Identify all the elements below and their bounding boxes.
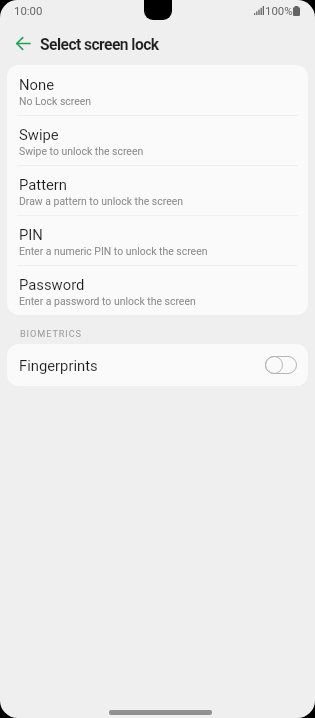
button[interactable]: None [7, 65, 308, 115]
staticText: Password [19, 276, 85, 293]
staticText: No Lock screen [19, 95, 92, 107]
staticText: 10:00 [14, 4, 43, 17]
button[interactable]: Fingerprints [7, 344, 308, 386]
staticText: Draw a pattern to unlock the screen [19, 195, 183, 207]
staticText: PIN [19, 226, 43, 243]
staticText: Fingerprints [19, 357, 98, 374]
button[interactable]: PIN [7, 215, 308, 265]
button[interactable]: Navigate up [7, 27, 39, 59]
button[interactable]: Swipe [7, 115, 308, 165]
staticText: Enter a password to unlock the screen [19, 295, 196, 307]
staticText: Enter a numeric PIN to unlock the screen [19, 245, 208, 257]
staticText: Pattern [19, 176, 68, 193]
staticText: Swipe to unlock the screen [19, 145, 144, 157]
staticText: None [19, 76, 55, 93]
staticText: Swipe [19, 126, 59, 143]
staticText: Select screen lock [40, 36, 159, 54]
button[interactable]: Password [7, 265, 308, 315]
button[interactable]: Pattern [7, 165, 308, 215]
staticText: 100% [265, 4, 293, 17]
staticText: BIOMETRICS [20, 328, 82, 339]
